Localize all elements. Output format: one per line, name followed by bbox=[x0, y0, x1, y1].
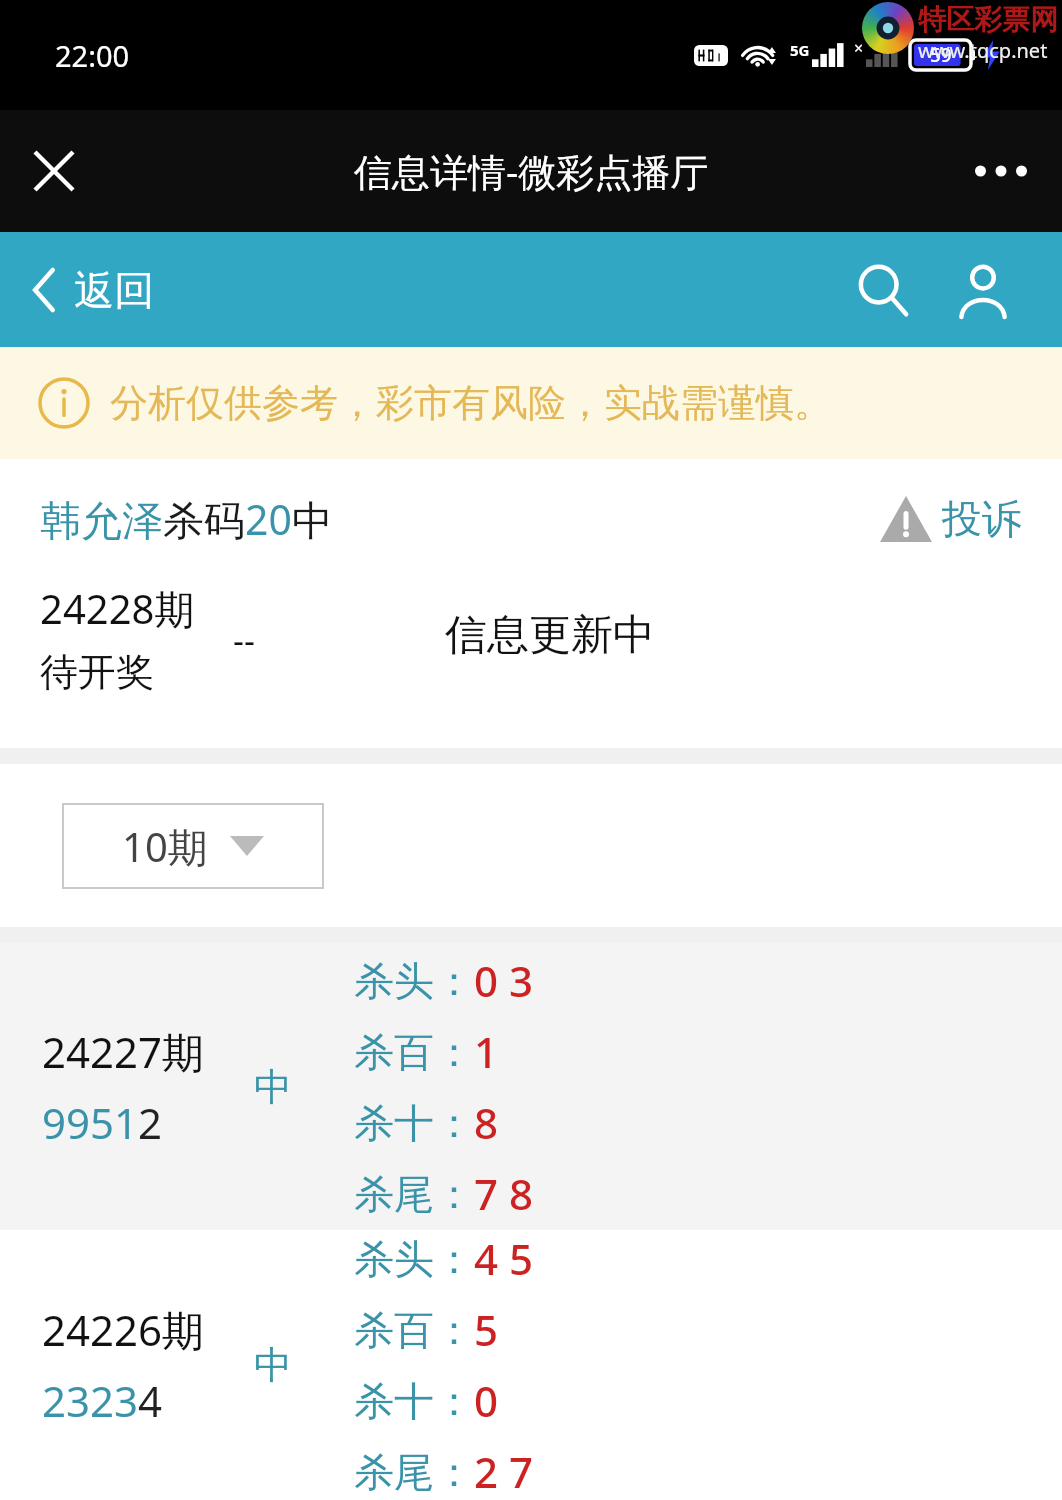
staticText: 99512 bbox=[42, 1094, 163, 1151]
staticText: 韩允泽杀码20中 bbox=[40, 491, 333, 547]
staticText: 0 3 bbox=[474, 952, 533, 1009]
staticText: 8 bbox=[474, 1094, 499, 1151]
staticText: 10期 bbox=[122, 819, 208, 874]
staticText: 5G bbox=[790, 40, 810, 60]
staticText: 杀百： bbox=[354, 1027, 474, 1077]
button[interactable]: 投诉 bbox=[880, 494, 1022, 544]
staticText: 返回 bbox=[74, 265, 154, 315]
button[interactable]: 返回 bbox=[34, 265, 154, 315]
staticText: × bbox=[854, 37, 864, 59]
staticText: 24227期 bbox=[42, 1023, 205, 1080]
staticText: 特区彩票网 bbox=[918, 2, 1058, 37]
button[interactable]: 10期 bbox=[62, 803, 324, 889]
button[interactable]: More options bbox=[968, 138, 1034, 204]
staticText: 1 bbox=[474, 1023, 499, 1080]
staticText: 22:00 bbox=[55, 36, 130, 75]
button[interactable]: Search bbox=[844, 251, 922, 329]
staticText: 杀百： bbox=[354, 1305, 474, 1355]
staticText: 中 bbox=[254, 1341, 354, 1389]
staticText: 2 7 bbox=[474, 1443, 533, 1500]
staticText: 杀头： bbox=[354, 1234, 474, 1284]
staticText: 23234 bbox=[42, 1372, 163, 1429]
staticText: 杀尾： bbox=[354, 1447, 474, 1497]
staticText: 5 bbox=[474, 1301, 499, 1358]
staticText: 59 bbox=[930, 42, 952, 68]
staticText: 24228期 bbox=[40, 581, 195, 636]
button[interactable]: Account bbox=[944, 251, 1022, 329]
staticText: 杀头： bbox=[354, 956, 474, 1006]
button[interactable]: 24227期 bbox=[0, 943, 1062, 1230]
staticText: 7 8 bbox=[474, 1165, 533, 1222]
staticText: 信息详情-微彩点播厅 bbox=[354, 145, 709, 197]
button[interactable]: 24226期 bbox=[0, 1230, 1062, 1500]
button[interactable]: Close bbox=[20, 137, 88, 205]
staticText: 杀尾： bbox=[354, 1169, 474, 1219]
staticText: 杀十： bbox=[354, 1376, 474, 1426]
staticText: 4 5 bbox=[474, 1230, 533, 1287]
staticText: www.tqcp.net bbox=[918, 37, 1048, 64]
staticText: 24226期 bbox=[42, 1301, 205, 1358]
staticText: 投诉 bbox=[942, 494, 1022, 544]
staticText: -- bbox=[233, 617, 255, 663]
staticText: 0 bbox=[474, 1372, 499, 1429]
staticText: 待开奖 bbox=[40, 648, 154, 696]
staticText: 信息更新中 bbox=[445, 609, 655, 662]
staticText: 中 bbox=[254, 1063, 354, 1111]
staticText: 分析仅供参考，彩市有风险，实战需谨慎。 bbox=[110, 379, 832, 427]
staticText: 杀十： bbox=[354, 1098, 474, 1148]
